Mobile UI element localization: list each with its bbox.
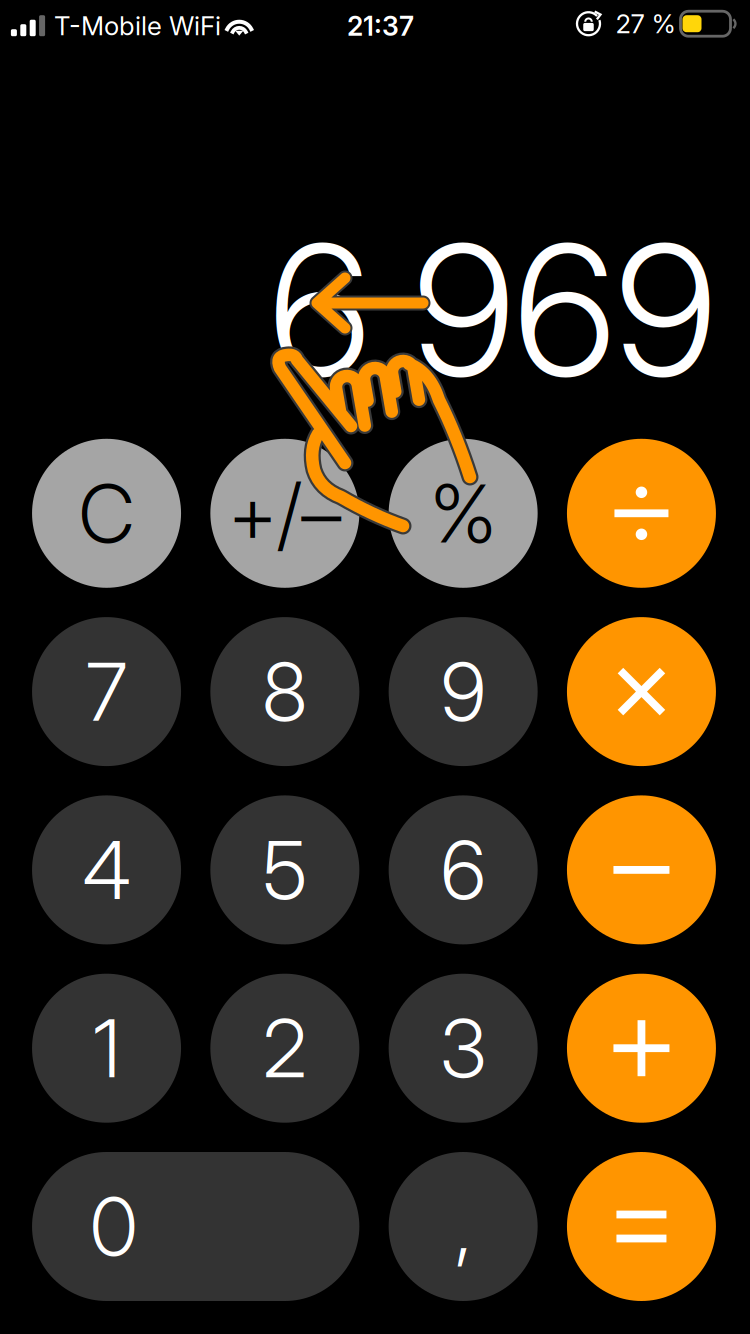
- button[interactable]: 2: [210, 974, 359, 1123]
- button[interactable]: +/–: [210, 439, 359, 588]
- button[interactable]: 0: [32, 1152, 359, 1301]
- button[interactable]: Minus: [567, 795, 716, 944]
- staticText: T-Mobile WiFi: [54, 10, 221, 41]
- staticText: +/–: [228, 465, 341, 562]
- staticText: 7: [86, 643, 127, 740]
- button[interactable]: 8: [210, 617, 359, 766]
- button[interactable]: 9: [389, 617, 538, 766]
- button[interactable]: 6: [389, 795, 538, 944]
- button[interactable]: 5: [210, 795, 359, 944]
- staticText: 2: [263, 1000, 307, 1097]
- staticText: 6: [441, 821, 486, 918]
- button[interactable]: C: [32, 439, 181, 588]
- button[interactable]: %: [389, 439, 538, 588]
- staticText: 9: [441, 643, 486, 740]
- button[interactable]: Plus: [567, 974, 716, 1123]
- button[interactable]: 4: [32, 795, 181, 944]
- button[interactable]: Multiply: [567, 617, 716, 766]
- button[interactable]: ,: [389, 1152, 538, 1301]
- staticText: ,: [455, 1178, 472, 1275]
- button[interactable]: 7: [32, 617, 181, 766]
- staticText: 4: [83, 821, 131, 918]
- staticText: 21:37: [347, 10, 414, 42]
- staticText: 3: [440, 1000, 486, 1097]
- staticText: 0: [90, 1178, 138, 1275]
- button[interactable]: Equals: [567, 1152, 716, 1301]
- staticText: C: [79, 465, 135, 562]
- staticText: 5: [263, 821, 307, 918]
- staticText: %: [430, 465, 496, 562]
- staticText: 8: [262, 643, 307, 740]
- staticText: 1: [93, 1000, 120, 1097]
- button[interactable]: 3: [389, 974, 538, 1123]
- staticText: 27 %: [615, 8, 675, 39]
- button[interactable]: Divide: [567, 439, 716, 588]
- button[interactable]: 1: [32, 974, 181, 1123]
- staticText: 6 969: [269, 201, 716, 419]
